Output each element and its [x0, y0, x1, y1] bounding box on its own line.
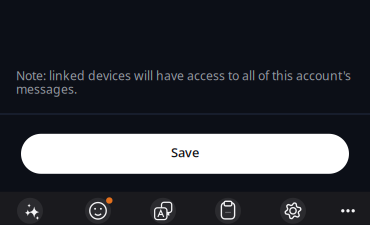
staticText: Save	[171, 144, 199, 161]
button[interactable]: Translate	[147, 195, 179, 225]
button[interactable]: More	[332, 195, 364, 225]
staticText: Note: linked devices will have access to…	[16, 67, 351, 97]
button[interactable]: Save	[21, 134, 349, 174]
button[interactable]: AI suggestions	[14, 195, 46, 225]
button[interactable]: Emoji	[82, 195, 114, 225]
button[interactable]: Clipboard	[212, 195, 244, 225]
button[interactable]: Settings	[277, 195, 309, 225]
